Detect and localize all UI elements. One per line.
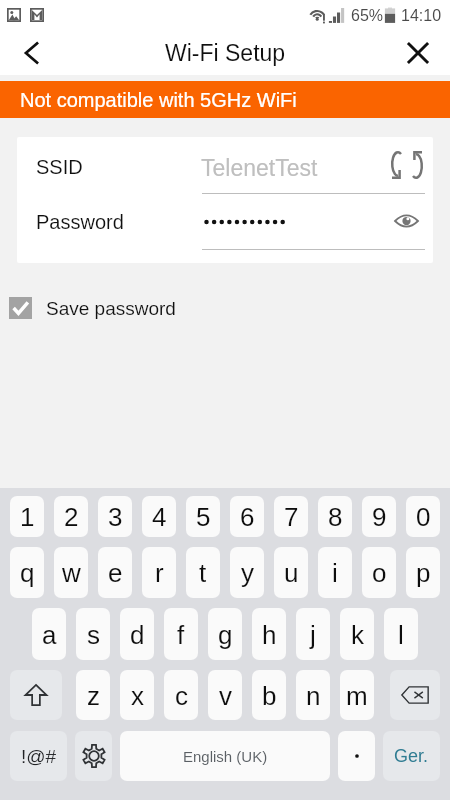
staticText: t [199,558,207,587]
button[interactable]: b [252,670,286,720]
staticText: c [175,681,188,710]
button[interactable]: w [54,547,88,598]
staticText: j [310,620,316,649]
staticText: Wi-Fi Setup [165,40,286,66]
staticText: w [62,558,81,587]
staticText: 7 [284,502,299,531]
button[interactable]: English (UK) [120,731,330,781]
staticText: e [108,558,123,587]
button[interactable]: g [208,608,242,660]
staticText: 6 [240,502,255,531]
button[interactable]: j [296,608,330,660]
staticText: 3 [108,502,123,531]
staticText: 9 [372,502,387,531]
button[interactable]: e [98,547,132,598]
button[interactable]: c [164,670,198,720]
button[interactable]: Save password [9,296,176,320]
staticText: r [155,558,164,587]
staticText: k [351,620,364,649]
button[interactable]: k [340,608,374,660]
button[interactable]: Backspace [390,670,440,720]
staticText: Password [36,211,124,233]
button[interactable]: Keyboard settings [75,731,112,781]
button[interactable]: u [274,547,308,598]
staticText: x [131,681,144,710]
staticText: o [372,558,387,587]
button[interactable]: x [120,670,154,720]
staticText: 2 [64,502,79,531]
staticText: 8 [328,502,343,531]
button[interactable]: 1 [10,496,44,537]
button[interactable]: Back [0,30,64,75]
button[interactable]: 5 [186,496,220,537]
staticText: z [87,681,100,710]
button[interactable]: !@# [10,731,67,781]
button[interactable]: Ger. [383,731,440,781]
button[interactable]: d [120,608,154,660]
staticText: p [416,558,431,587]
staticText: s [87,620,100,649]
button[interactable]: m [340,670,374,720]
button[interactable]: Period [338,731,375,781]
staticText: l [398,620,404,649]
staticText: 65% [351,7,384,25]
staticText: Save password [46,298,176,319]
button[interactable]: q [10,547,44,598]
staticText: i [332,558,338,587]
staticText: !@# [21,746,57,767]
staticText: Ger. [394,746,429,766]
button[interactable]: t [186,547,220,598]
staticText: g [218,620,233,649]
staticText: q [20,558,35,587]
staticText: d [130,620,145,649]
button[interactable]: a [32,608,66,660]
button[interactable]: Refresh network list [384,143,430,187]
staticText: b [262,681,277,710]
button[interactable]: v [208,670,242,720]
button[interactable]: r [142,547,176,598]
staticText: 4 [152,502,167,531]
staticText: Not compatible with 5GHz WiFi [20,89,297,111]
staticText: a [42,620,57,649]
button[interactable]: h [252,608,286,660]
button[interactable]: i [318,547,352,598]
staticText: v [219,681,232,710]
staticText: 0 [416,502,431,531]
button[interactable]: y [230,547,264,598]
button[interactable]: 0 [406,496,440,537]
staticText: 5 [196,502,211,531]
button[interactable]: o [362,547,396,598]
button[interactable]: 8 [318,496,352,537]
button[interactable]: Close [386,30,450,75]
button[interactable]: p [406,547,440,598]
staticText: m [346,681,368,710]
button[interactable]: Show password [384,199,428,243]
button[interactable]: 9 [362,496,396,537]
staticText: h [262,620,277,649]
staticText: SSID [36,156,83,178]
button[interactable]: n [296,670,330,720]
staticText: 1 [20,502,35,531]
staticText: f [177,620,185,649]
staticText: n [306,681,321,710]
button[interactable]: z [76,670,110,720]
staticText: y [241,558,254,587]
button[interactable]: l [384,608,418,660]
button[interactable]: 4 [142,496,176,537]
button[interactable]: 7 [274,496,308,537]
button[interactable]: s [76,608,110,660]
button[interactable]: 3 [98,496,132,537]
staticText: TelenetTest [201,155,318,181]
button[interactable]: 6 [230,496,264,537]
button[interactable]: Shift [10,670,62,720]
staticText: 14:10 [401,7,442,25]
button[interactable]: 2 [54,496,88,537]
button[interactable]: f [164,608,198,660]
staticText: English (UK) [183,748,268,765]
staticText: u [284,558,299,587]
